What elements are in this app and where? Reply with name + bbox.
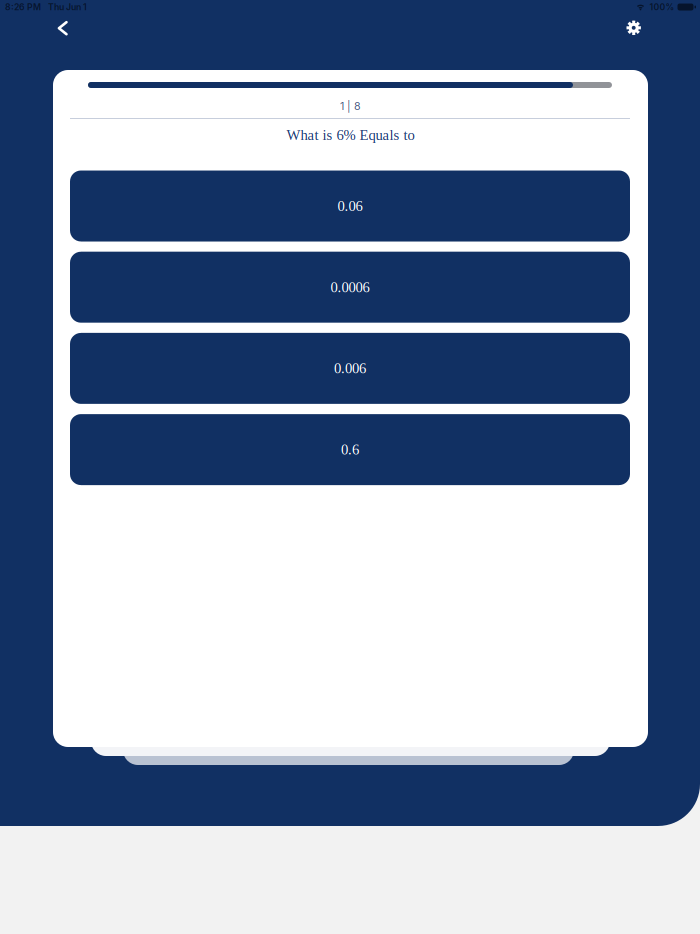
- button[interactable]: Settings: [612, 6, 656, 50]
- button[interactable]: 0.0006: [70, 252, 630, 323]
- button[interactable]: 0.06: [70, 170, 630, 241]
- button[interactable]: Back: [41, 6, 85, 50]
- staticText: 8:26 PM: [5, 2, 41, 12]
- button[interactable]: 0.006: [70, 333, 630, 404]
- staticText: Thu Jun 1: [48, 2, 87, 12]
- staticText: 0.06: [337, 198, 362, 214]
- staticText: 1 | 8: [340, 99, 361, 112]
- staticText: 0.006: [334, 360, 366, 376]
- staticText: What is 6% Equals to: [286, 127, 414, 143]
- staticText: 100%: [649, 2, 674, 12]
- staticText: 0.6: [341, 441, 359, 458]
- button[interactable]: 0.6: [70, 414, 630, 485]
- staticText: 0.0006: [330, 279, 369, 295]
